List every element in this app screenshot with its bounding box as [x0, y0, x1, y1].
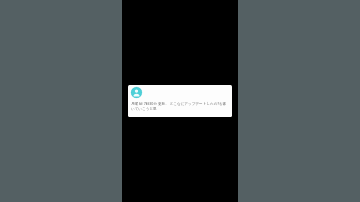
staticText: 月曜 朝 7時30分 更新。 とこなにアップデートしたの?を書いていこうと思	[131, 101, 229, 111]
button[interactable]: Profile avatar	[128, 85, 232, 117]
button[interactable]: Profile avatar	[122, 0, 238, 202]
other: Profile avatar	[131, 87, 142, 98]
